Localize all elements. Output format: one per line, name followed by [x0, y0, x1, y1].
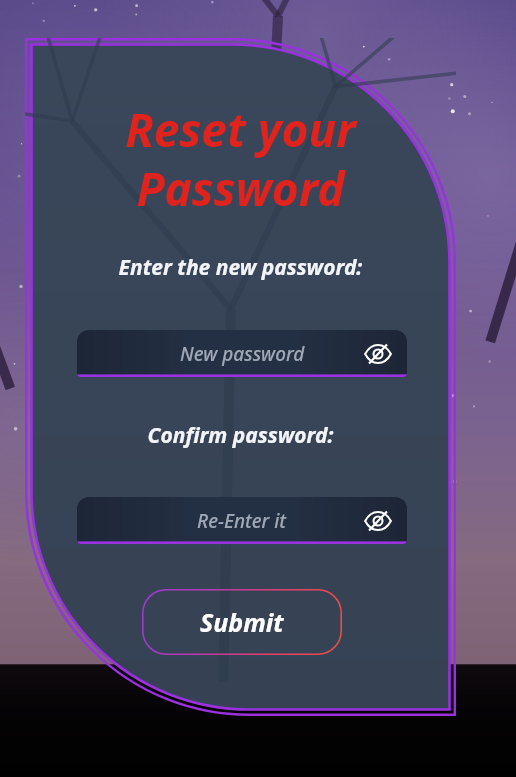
button[interactable]: Show password — [361, 504, 395, 538]
button[interactable]: Show password — [361, 337, 395, 371]
staticText: Submit — [200, 605, 284, 639]
staticText: New password — [180, 341, 305, 367]
button[interactable]: Re-Enter it — [77, 497, 407, 544]
staticText: Enter the new password: — [25, 253, 456, 282]
button[interactable]: Submit — [142, 589, 342, 655]
staticText: Confirm password: — [25, 421, 456, 450]
staticText: Reset your Password — [37, 98, 444, 219]
button[interactable]: New password — [77, 330, 407, 377]
staticText: Re-Enter it — [197, 508, 287, 534]
